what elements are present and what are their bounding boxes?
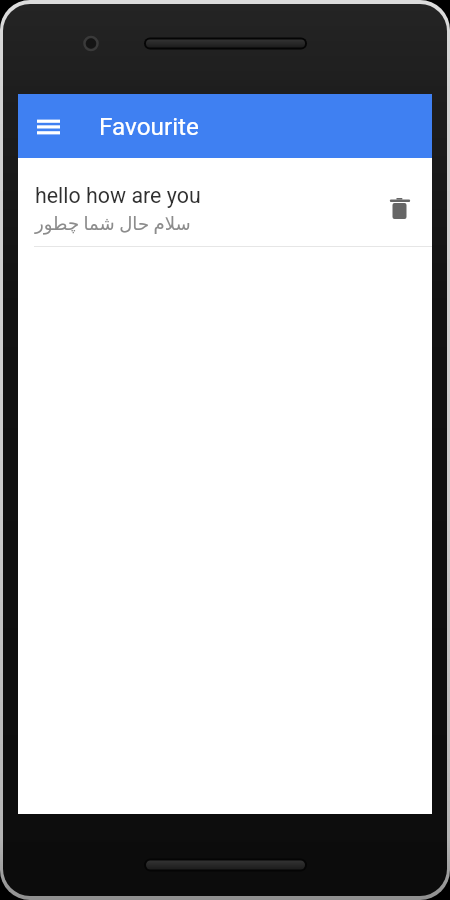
button[interactable]: Delete <box>378 186 422 230</box>
button[interactable]: hello how are you <box>18 158 432 247</box>
button[interactable]: Open navigation menu <box>24 102 72 150</box>
staticText: Favourite <box>99 112 199 140</box>
staticText: hello how are you <box>35 183 201 208</box>
staticText: سلام حال شما چطور <box>35 213 191 234</box>
